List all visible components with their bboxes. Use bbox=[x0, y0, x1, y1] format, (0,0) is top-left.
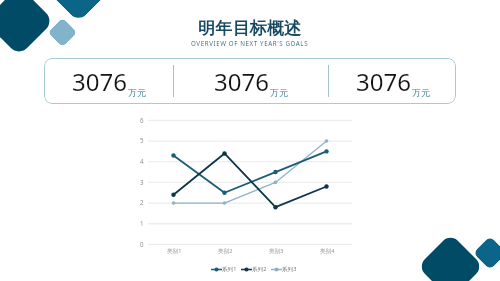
button[interactable]: 3076 bbox=[44, 58, 456, 104]
staticText: 万元 bbox=[412, 87, 430, 98]
button[interactable]: 系列2 bbox=[241, 265, 267, 273]
staticText: 类别3 bbox=[269, 247, 284, 255]
staticText: 系列3 bbox=[282, 265, 297, 273]
staticText: 4 bbox=[140, 157, 144, 165]
staticText: 万元 bbox=[128, 87, 146, 98]
staticText: OVERVIEW OF NEXT YEAR'S GOALS bbox=[191, 39, 309, 47]
staticText: 3076 bbox=[214, 65, 269, 98]
button[interactable]: 系列3 bbox=[271, 265, 297, 273]
staticText: 明年目标概述 bbox=[198, 18, 302, 39]
staticText: 系列1 bbox=[222, 265, 237, 273]
staticText: 1 bbox=[140, 219, 144, 227]
staticText: 2 bbox=[140, 198, 144, 206]
staticText: 0 bbox=[140, 240, 144, 248]
staticText: 系列2 bbox=[252, 265, 267, 273]
staticText: 类别2 bbox=[218, 247, 233, 255]
staticText: 3076 bbox=[72, 65, 127, 98]
staticText: 6 bbox=[140, 116, 144, 124]
staticText: 3 bbox=[140, 178, 144, 186]
staticText: 3076 bbox=[356, 65, 411, 98]
staticText: 5 bbox=[140, 136, 144, 144]
button[interactable]: 系列1 bbox=[211, 265, 237, 273]
staticText: 类别4 bbox=[320, 247, 335, 255]
staticText: 万元 bbox=[270, 87, 288, 98]
staticText: 类别1 bbox=[167, 247, 182, 255]
